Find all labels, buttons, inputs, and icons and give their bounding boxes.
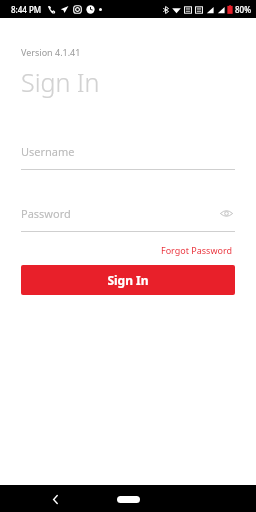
staticText: 8:44 PM — [11, 4, 42, 15]
staticText: Password — [21, 206, 71, 221]
staticText: Sign In — [21, 65, 100, 99]
button[interactable]: Back — [44, 488, 66, 510]
button[interactable]: Home — [108, 489, 148, 509]
staticText: Version 4.1.41 — [21, 46, 81, 58]
button[interactable]: Password — [21, 203, 235, 223]
staticText: Sign In — [107, 272, 149, 288]
staticText: Forgot Password — [161, 244, 233, 256]
button[interactable]: Show password — [217, 204, 235, 222]
staticText: 80% — [235, 4, 251, 15]
button[interactable]: Username — [21, 141, 235, 161]
button[interactable]: Forgot Password — [159, 242, 235, 258]
staticText: Username — [21, 144, 75, 159]
button[interactable]: Sign In — [21, 265, 235, 295]
